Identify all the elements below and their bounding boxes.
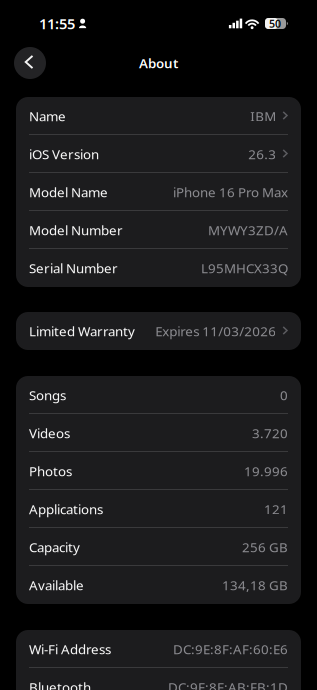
staticText: 26.3 (248, 145, 276, 163)
staticText: Name (29, 107, 66, 125)
button[interactable]: Capacity (16, 528, 301, 566)
button[interactable]: Videos (16, 414, 301, 452)
staticText: Expires 11/03/2026 (155, 322, 276, 340)
staticText: iPhone 16 Pro Max (173, 183, 288, 201)
staticText: Model Number (29, 221, 123, 239)
button[interactable]: Name (16, 97, 301, 135)
staticText: Available (29, 576, 84, 594)
button[interactable]: Songs (16, 376, 301, 414)
button[interactable]: Photos (16, 452, 301, 490)
staticText: 0 (280, 386, 288, 404)
button[interactable]: Serial Number (16, 249, 301, 287)
button[interactable]: Available (16, 566, 301, 604)
staticText: About (139, 54, 178, 72)
staticText: Photos (29, 462, 72, 480)
staticText: MYWY3ZD/A (208, 221, 288, 239)
staticText: L95MHCX33Q (201, 259, 288, 277)
button[interactable]: Bluetooth (16, 668, 301, 690)
staticText: 121 (264, 500, 288, 518)
staticText: iOS Version (29, 145, 99, 163)
button[interactable]: Applications (16, 490, 301, 528)
staticText: 19.996 (244, 462, 288, 480)
staticText: Bluetooth (29, 678, 91, 690)
staticText: 134,18 GB (222, 576, 288, 594)
staticText: Limited Warranty (29, 322, 135, 340)
staticText: Applications (29, 500, 103, 518)
button[interactable]: Back (14, 47, 46, 79)
staticText: IBM (250, 107, 276, 125)
staticText: Songs (29, 386, 66, 404)
staticText: Serial Number (29, 259, 118, 277)
staticText: 11:55 (39, 14, 75, 33)
staticText: Wi-Fi Address (29, 640, 111, 658)
button[interactable]: Model Number (16, 211, 301, 249)
staticText: Videos (29, 424, 70, 442)
staticText: DC:9E:8F:AF:60:E6 (173, 640, 288, 658)
staticText: 3.720 (252, 424, 288, 442)
button[interactable]: Limited Warranty (16, 312, 301, 350)
staticText: 50 (269, 16, 281, 31)
button[interactable]: Wi-Fi Address (16, 630, 301, 668)
staticText: 256 GB (242, 538, 288, 556)
button[interactable]: Model Name (16, 173, 301, 211)
button[interactable]: iOS Version (16, 135, 301, 173)
staticText: Capacity (29, 538, 80, 556)
staticText: DC:9E:8F:AB:FB:1D (168, 678, 288, 690)
staticText: Model Name (29, 183, 108, 201)
